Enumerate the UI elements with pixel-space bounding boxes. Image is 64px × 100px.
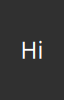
- staticText: Hi: [20, 35, 43, 65]
